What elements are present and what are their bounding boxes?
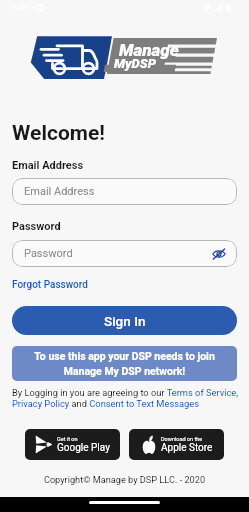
staticText: Forgot Password bbox=[12, 279, 88, 291]
button[interactable]: Password bbox=[12, 240, 237, 267]
button[interactable]: To use this app your DSP needs to join M… bbox=[12, 346, 237, 381]
staticText: To use this app your DSP needs to join M… bbox=[34, 350, 215, 377]
staticText: Email Address bbox=[12, 159, 84, 172]
button[interactable]: Sign In bbox=[12, 306, 237, 335]
staticText: MyDSP bbox=[114, 56, 156, 71]
staticText: By Logging in you are agreeing to our Te… bbox=[12, 387, 240, 409]
staticText: Password bbox=[24, 247, 73, 260]
staticText: Google Play bbox=[57, 442, 110, 454]
button[interactable]: Forgot Password bbox=[12, 279, 88, 291]
button[interactable]: Download on the bbox=[129, 429, 224, 460]
staticText: Download on the bbox=[161, 436, 203, 442]
button[interactable]: Email Address bbox=[12, 178, 237, 205]
staticText: Welcome! bbox=[12, 121, 105, 146]
staticText: Copyright© Manage by DSP LLC. - 2020 bbox=[0, 474, 249, 485]
staticText: Apple Store bbox=[161, 442, 213, 454]
button[interactable]: Toggle password visibility bbox=[211, 246, 227, 262]
staticText: Manage bbox=[119, 40, 179, 60]
staticText: Sign In bbox=[104, 313, 146, 329]
staticText: Get it on bbox=[57, 436, 78, 442]
button[interactable]: Get it on bbox=[25, 429, 120, 460]
staticText: Password bbox=[12, 220, 61, 233]
button[interactable]: Home bbox=[89, 501, 160, 504]
staticText: 7:58 bbox=[12, 3, 27, 12]
staticText: Email Address bbox=[24, 185, 95, 198]
